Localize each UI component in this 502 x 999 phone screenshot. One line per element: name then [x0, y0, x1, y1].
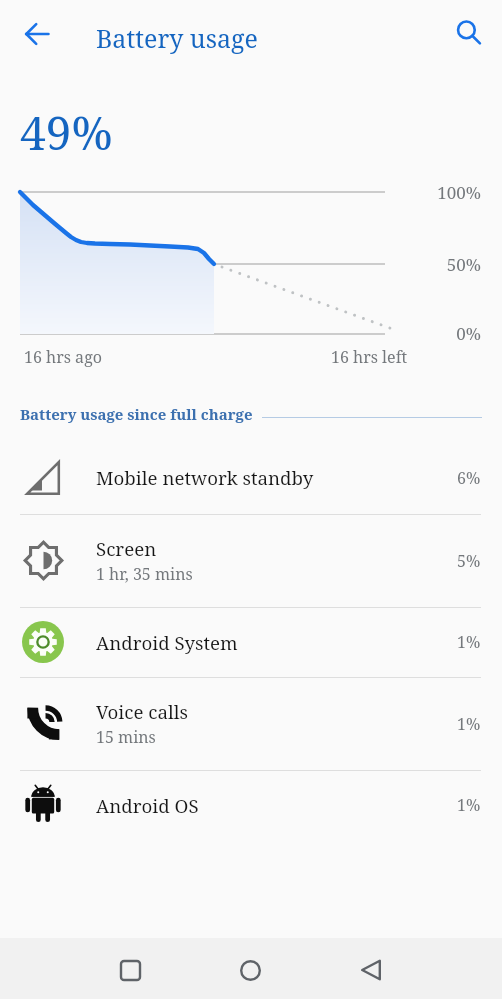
staticText: 50% [400, 253, 481, 276]
staticText: 1% [457, 631, 481, 653]
staticText: Android OS [96, 793, 199, 818]
staticText: 100% [400, 181, 481, 204]
staticText: 6% [457, 467, 481, 489]
staticText: 49% [20, 101, 113, 164]
button[interactable]: Android System [0, 607, 502, 677]
button[interactable]: Home [226, 946, 274, 994]
staticText: 16 hrs ago [24, 346, 102, 368]
staticText: Battery usage [96, 21, 258, 55]
button[interactable]: Back [13, 10, 61, 58]
staticText: Screen [96, 536, 157, 561]
button[interactable]: Android OS [0, 770, 502, 840]
staticText: 1% [457, 713, 481, 735]
staticText: Voice calls [96, 699, 189, 724]
button[interactable]: Mobile network standby [0, 441, 502, 514]
button[interactable]: Recent apps [106, 946, 154, 994]
staticText: 1 hr, 35 mins [96, 563, 193, 585]
staticText: 5% [457, 550, 481, 572]
staticText: Mobile network standby [96, 465, 314, 490]
button[interactable]: Back [347, 946, 395, 994]
button[interactable]: Search [445, 9, 493, 57]
staticText: Android System [96, 630, 238, 655]
staticText: 0% [400, 322, 481, 345]
staticText: 1% [457, 794, 481, 816]
staticText: 15 mins [96, 726, 156, 748]
button[interactable]: Voice calls [0, 677, 502, 770]
staticText: 16 hrs left [331, 346, 408, 368]
button[interactable]: Screen [0, 514, 502, 607]
staticText: Battery usage since full charge [20, 404, 253, 424]
